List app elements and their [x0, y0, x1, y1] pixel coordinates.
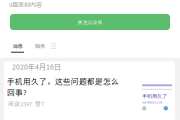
staticText: 阅读1597 赞7	[8, 99, 44, 108]
button[interactable]: 关注公众号	[10, 14, 170, 30]
staticText: 这些问题都是怎么回事	[142, 101, 162, 104]
staticText: 关注公众号	[77, 18, 102, 26]
staticText: 服务	[35, 42, 45, 50]
button[interactable]: 服务	[35, 42, 45, 50]
button[interactable]: 消息	[11, 42, 24, 53]
staticText: 2020年4月16日	[12, 61, 61, 71]
staticText: 9篇原创内容	[9, 0, 42, 9]
staticText: 手机用久了	[142, 92, 167, 100]
button[interactable]: More	[51, 43, 56, 49]
staticText: 手机用久了，这些问题都是怎么回事?	[7, 75, 119, 97]
staticText: 消息	[12, 42, 22, 50]
